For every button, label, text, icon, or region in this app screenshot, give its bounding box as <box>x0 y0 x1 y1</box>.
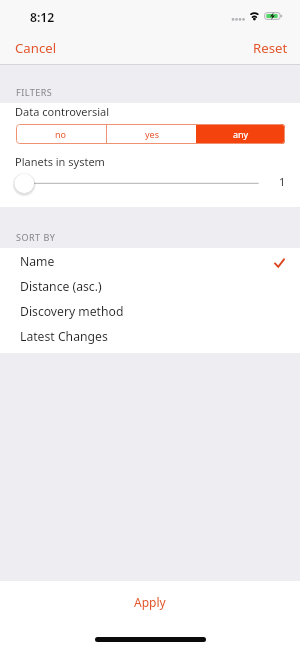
staticText: yes <box>145 128 159 140</box>
staticText: Distance (asc.) <box>20 278 102 295</box>
button[interactable]: any <box>196 124 285 144</box>
button[interactable]: yes <box>107 124 196 144</box>
staticText: Reset <box>253 39 288 57</box>
staticText: Cancel <box>15 39 57 57</box>
button[interactable]: Latest Changes <box>0 324 300 349</box>
staticText: Name <box>20 253 55 270</box>
staticText: 8:12 <box>30 9 55 26</box>
button[interactable]: Reset <box>241 33 300 63</box>
button[interactable]: Distance (asc.) <box>0 274 300 299</box>
staticText: FILTERS <box>16 86 53 98</box>
staticText: Data controversial <box>15 104 110 119</box>
button[interactable]: Apply <box>112 589 188 615</box>
button[interactable]: no <box>16 124 106 144</box>
button[interactable]: Name <box>0 249 300 274</box>
button[interactable]: Cancel <box>0 33 69 63</box>
staticText: Apply <box>134 594 166 610</box>
button[interactable]: Planets in system slider <box>0 171 300 196</box>
staticText: 1 <box>279 174 286 189</box>
staticText: Discovery method <box>20 303 124 320</box>
staticText: no <box>55 128 67 140</box>
staticText: Latest Changes <box>20 328 108 345</box>
button[interactable]: Discovery method <box>0 299 300 324</box>
staticText: any <box>233 128 249 140</box>
staticText: Planets in system <box>15 154 105 169</box>
staticText: SORT BY <box>16 231 56 243</box>
